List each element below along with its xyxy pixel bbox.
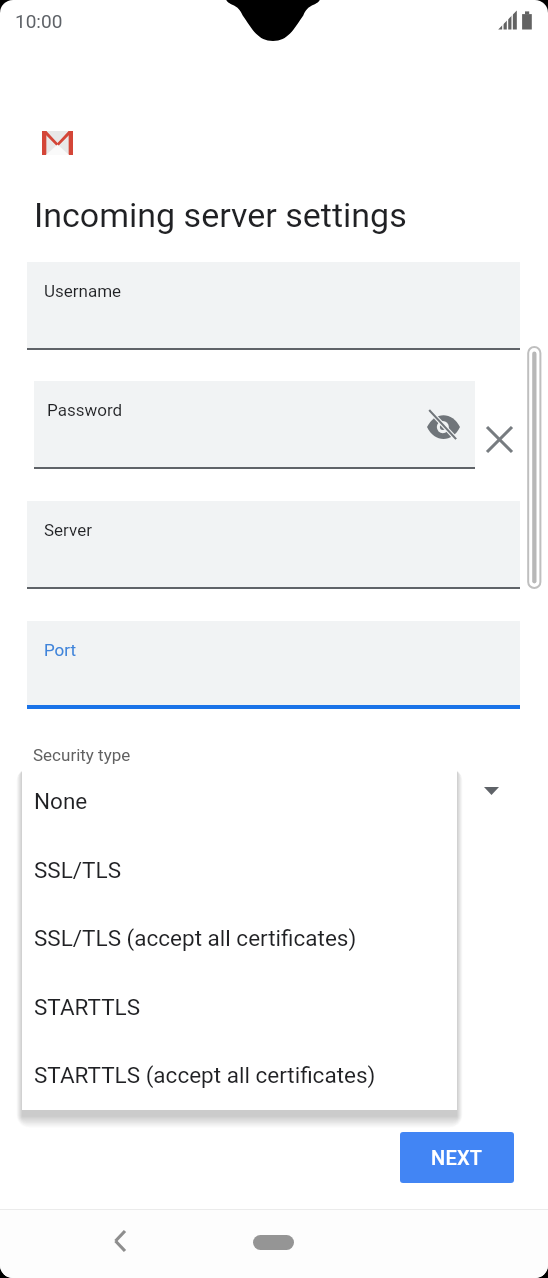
button[interactable]: STARTTLS (accept all certificates) xyxy=(22,1040,457,1109)
button[interactable]: Toggle password visibility xyxy=(421,404,465,448)
button[interactable]: STARTTLS xyxy=(22,972,457,1041)
button[interactable]: Port xyxy=(27,621,520,709)
staticText: NEXT xyxy=(431,1146,483,1169)
button[interactable]: Home xyxy=(253,1235,294,1250)
staticText: SSL/TLS (accept all certificates) xyxy=(34,925,357,951)
button[interactable]: Open security type dropdown xyxy=(469,769,513,813)
button[interactable]: SSL/TLS xyxy=(22,835,457,904)
button[interactable]: Back xyxy=(98,1220,140,1262)
staticText: SSL/TLS xyxy=(34,857,122,883)
staticText: Security type xyxy=(33,745,131,765)
staticText: STARTTLS xyxy=(34,994,141,1020)
button[interactable]: Server xyxy=(27,501,520,589)
staticText: Username xyxy=(44,281,122,301)
button[interactable]: None xyxy=(22,766,457,835)
staticText: Password xyxy=(47,400,123,420)
button[interactable]: Password xyxy=(34,381,475,469)
staticText: STARTTLS (accept all certificates) xyxy=(34,1062,376,1088)
staticText: Server xyxy=(44,520,92,540)
staticText: Port xyxy=(44,640,77,660)
button[interactable]: Clear password xyxy=(478,418,521,461)
staticText: Incoming server settings xyxy=(34,195,407,235)
button[interactable]: Username xyxy=(27,262,520,350)
staticText: 10:00 xyxy=(15,10,63,32)
staticText: None xyxy=(34,788,88,814)
button[interactable]: NEXT xyxy=(400,1132,514,1183)
button[interactable]: SSL/TLS (accept all certificates) xyxy=(22,903,457,972)
